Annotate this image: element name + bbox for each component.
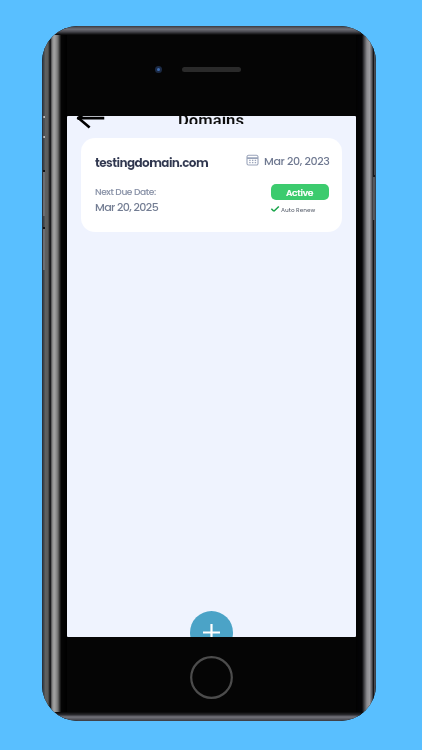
staticText: testingdomain.com (95, 154, 209, 171)
staticText: Auto Renew (281, 206, 316, 214)
button[interactable]: testingdomain.com (81, 138, 342, 232)
button[interactable]: Active (271, 184, 329, 200)
button[interactable]: Back (69, 116, 102, 121)
staticText: Mar 20, 2025 (95, 199, 159, 215)
staticText: Next Due Date: (95, 185, 156, 198)
staticText: Mar 20, 2023 (264, 153, 330, 169)
button[interactable]: Add domain (190, 611, 233, 637)
staticText: Active (286, 186, 314, 199)
staticText: Domains (178, 116, 245, 124)
